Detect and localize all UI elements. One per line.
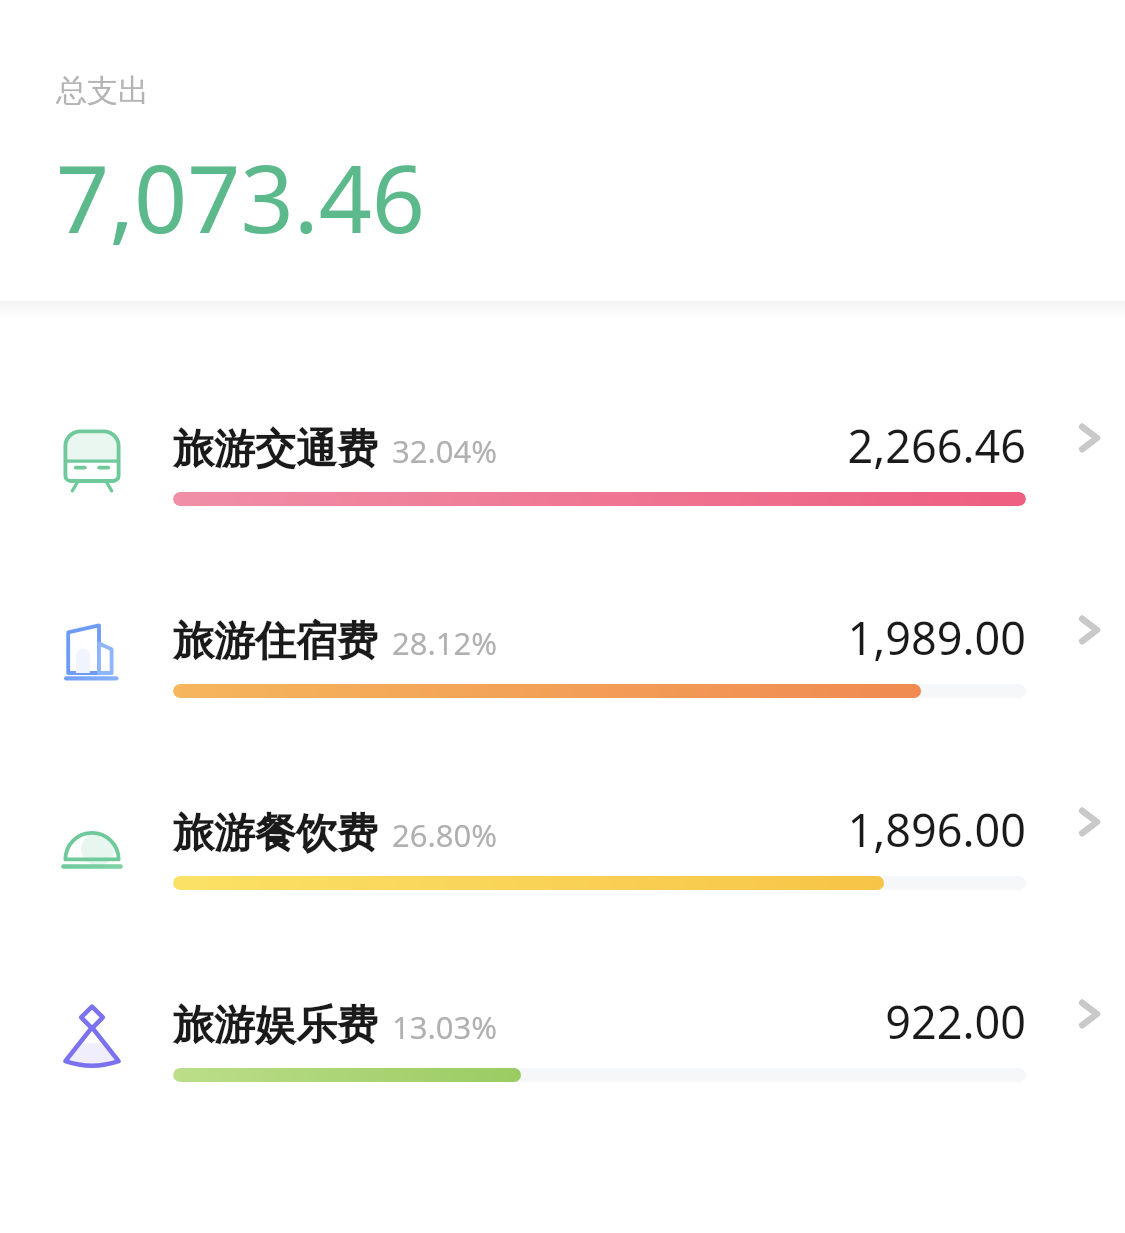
staticText: 28.12%: [392, 622, 497, 664]
button[interactable]: 查看详情: [1053, 962, 1125, 1110]
staticText: 922.00: [885, 991, 1026, 1052]
staticText: 旅游娱乐费: [173, 1000, 378, 1052]
staticText: 总支出: [56, 71, 149, 110]
button[interactable]: 查看详情: [1053, 578, 1125, 726]
staticText: 26.80%: [392, 814, 497, 856]
button[interactable]: 总支出: [0, 0, 1125, 301]
staticText: 32.04%: [392, 430, 497, 472]
button[interactable]: 查看详情: [1053, 770, 1125, 918]
button[interactable]: 旅游娱乐费: [0, 962, 1125, 1110]
staticText: 旅游餐饮费: [173, 808, 378, 860]
staticText: 1,989.00: [847, 607, 1026, 668]
staticText: 13.03%: [392, 1006, 497, 1048]
staticText: 7,073.46: [56, 134, 426, 261]
button[interactable]: 旅游餐饮费: [0, 770, 1125, 918]
staticText: 1,896.00: [847, 799, 1026, 860]
staticText: 旅游住宿费: [173, 616, 378, 668]
staticText: 2,266.46: [847, 415, 1026, 476]
button[interactable]: 查看详情: [1053, 386, 1125, 534]
button[interactable]: 旅游住宿费: [0, 578, 1125, 726]
staticText: 旅游交通费: [173, 424, 378, 476]
button[interactable]: 旅游交通费: [0, 386, 1125, 534]
